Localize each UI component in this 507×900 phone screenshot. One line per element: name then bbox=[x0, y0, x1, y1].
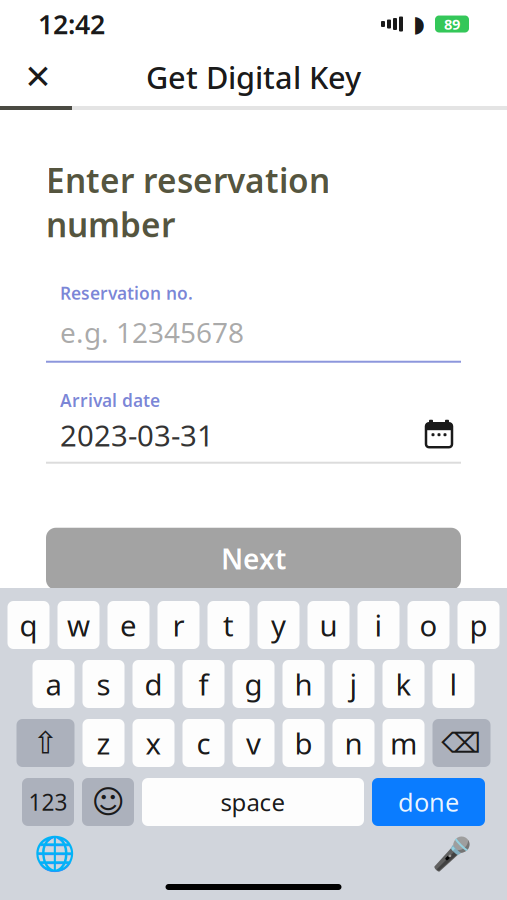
staticText: t bbox=[223, 605, 234, 644]
staticText: 123 bbox=[28, 787, 67, 817]
staticText: ◗ bbox=[413, 11, 425, 37]
staticText: done bbox=[398, 785, 459, 819]
staticText: b bbox=[294, 723, 312, 762]
button[interactable]: o bbox=[407, 601, 449, 649]
button[interactable]: Change keyboard bbox=[33, 832, 77, 876]
staticText: g bbox=[244, 664, 262, 703]
button[interactable]: r bbox=[157, 601, 199, 649]
staticText: 89 bbox=[444, 14, 460, 34]
staticText: ⇧ bbox=[32, 726, 58, 760]
button[interactable]: j bbox=[332, 660, 374, 708]
button[interactable]: d bbox=[132, 660, 174, 708]
button[interactable]: done bbox=[372, 778, 485, 826]
staticText: Reservation no. bbox=[60, 281, 193, 304]
button[interactable]: Shift bbox=[16, 719, 74, 767]
staticText: 🎤 bbox=[432, 836, 472, 872]
staticText: e bbox=[120, 605, 137, 644]
button[interactable]: Choose date bbox=[417, 417, 461, 453]
button[interactable]: c bbox=[182, 719, 224, 767]
button[interactable]: i bbox=[357, 601, 399, 649]
button[interactable]: z bbox=[82, 719, 124, 767]
button[interactable]: e bbox=[107, 601, 149, 649]
staticText: z bbox=[96, 723, 110, 762]
button[interactable]: Close bbox=[13, 52, 63, 102]
button[interactable]: Emoji bbox=[82, 778, 134, 826]
staticText: Arrival date bbox=[60, 389, 160, 412]
button[interactable]: p bbox=[457, 601, 499, 649]
button[interactable]: Delete bbox=[432, 719, 490, 767]
staticText: m bbox=[390, 723, 417, 762]
staticText: o bbox=[419, 605, 437, 644]
staticText: l bbox=[449, 664, 457, 703]
staticText: ☺ bbox=[91, 784, 124, 820]
staticText: r bbox=[172, 605, 184, 644]
button[interactable]: x bbox=[132, 719, 174, 767]
staticText: h bbox=[294, 664, 312, 703]
staticText: Next bbox=[221, 540, 286, 577]
staticText: Get Digital Key bbox=[146, 57, 361, 97]
staticText: p bbox=[469, 605, 487, 644]
staticText: space bbox=[220, 786, 285, 818]
staticText: w bbox=[67, 605, 90, 644]
button[interactable]: Dictation bbox=[430, 832, 474, 876]
staticText: i bbox=[374, 605, 382, 644]
button[interactable]: t bbox=[207, 601, 249, 649]
button[interactable]: w bbox=[57, 601, 99, 649]
button[interactable]: Next bbox=[46, 528, 461, 590]
staticText: j bbox=[349, 664, 357, 703]
button[interactable]: 123 bbox=[22, 778, 74, 826]
button[interactable]: n bbox=[332, 719, 374, 767]
button[interactable]: k bbox=[382, 660, 424, 708]
staticText: e.g. 12345678 bbox=[60, 313, 244, 351]
staticText: a bbox=[45, 664, 61, 703]
staticText: c bbox=[196, 723, 210, 762]
staticText: d bbox=[144, 664, 162, 703]
staticText: f bbox=[198, 664, 208, 703]
button[interactable]: l bbox=[432, 660, 474, 708]
button[interactable]: a bbox=[32, 660, 74, 708]
button[interactable]: f bbox=[182, 660, 224, 708]
button[interactable]: b bbox=[282, 719, 324, 767]
staticText: v bbox=[246, 723, 261, 762]
button[interactable]: space bbox=[142, 778, 364, 826]
staticText: k bbox=[395, 664, 411, 703]
staticText: q bbox=[19, 605, 37, 644]
staticText: ✕ bbox=[24, 58, 52, 96]
staticText: s bbox=[96, 664, 110, 703]
staticText: 2023-03-31 bbox=[60, 416, 214, 455]
staticText: ⌫ bbox=[441, 727, 481, 759]
button[interactable]: q bbox=[7, 601, 49, 649]
staticText: y bbox=[271, 605, 286, 644]
button[interactable]: m bbox=[382, 719, 424, 767]
staticText: 🌐 bbox=[34, 835, 76, 873]
staticText: n bbox=[344, 723, 362, 762]
button[interactable]: v bbox=[232, 719, 274, 767]
button[interactable]: g bbox=[232, 660, 274, 708]
button[interactable]: s bbox=[82, 660, 124, 708]
staticText: 12:42 bbox=[38, 6, 105, 42]
button[interactable]: u bbox=[307, 601, 349, 649]
staticText: Enter reservation number bbox=[46, 158, 330, 246]
staticText: x bbox=[145, 723, 161, 762]
button[interactable]: h bbox=[282, 660, 324, 708]
staticText: u bbox=[319, 605, 337, 644]
button[interactable]: y bbox=[257, 601, 299, 649]
